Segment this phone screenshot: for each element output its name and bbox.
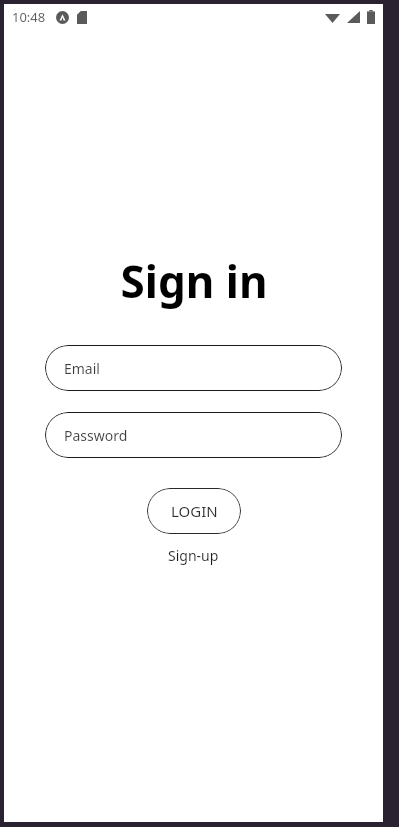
button[interactable]: Sign-up <box>162 544 225 567</box>
staticText: Sign in <box>120 251 268 311</box>
button[interactable]: LOGIN <box>147 488 241 534</box>
staticText: 10:48 <box>12 8 46 26</box>
staticText: LOGIN <box>171 501 218 521</box>
button[interactable]: Password <box>45 412 342 458</box>
staticText: Sign-up <box>168 546 219 565</box>
staticText: Password <box>64 426 128 445</box>
button[interactable]: Email <box>45 345 342 391</box>
staticText: Email <box>64 359 100 378</box>
